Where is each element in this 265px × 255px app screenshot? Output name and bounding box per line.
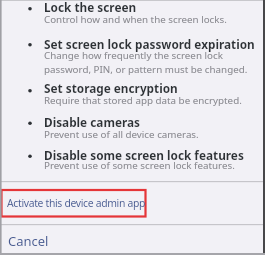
staticText: Set storage encryption xyxy=(44,80,178,96)
staticText: Lock the screen xyxy=(44,0,137,15)
staticText: Change how frequently the screen lock pa… xyxy=(44,49,248,76)
staticText: Disable cameras xyxy=(44,114,140,130)
button[interactable]: Cancel xyxy=(0,225,265,255)
staticText: Prevent use of some screen lock features… xyxy=(44,159,235,172)
staticText: Disable some screen lock features xyxy=(44,147,244,163)
staticText: Prevent use of all device cameras. xyxy=(44,128,199,141)
staticText: Set screen lock password expiration xyxy=(44,36,255,52)
button[interactable]: Activate this device admin app xyxy=(0,182,265,224)
staticText: Activate this device admin app xyxy=(7,196,146,210)
staticText: Control how and when the screen locks. xyxy=(44,13,227,26)
staticText: Cancel xyxy=(8,232,49,250)
staticText: Require that stored app data be encrypte… xyxy=(44,94,242,107)
